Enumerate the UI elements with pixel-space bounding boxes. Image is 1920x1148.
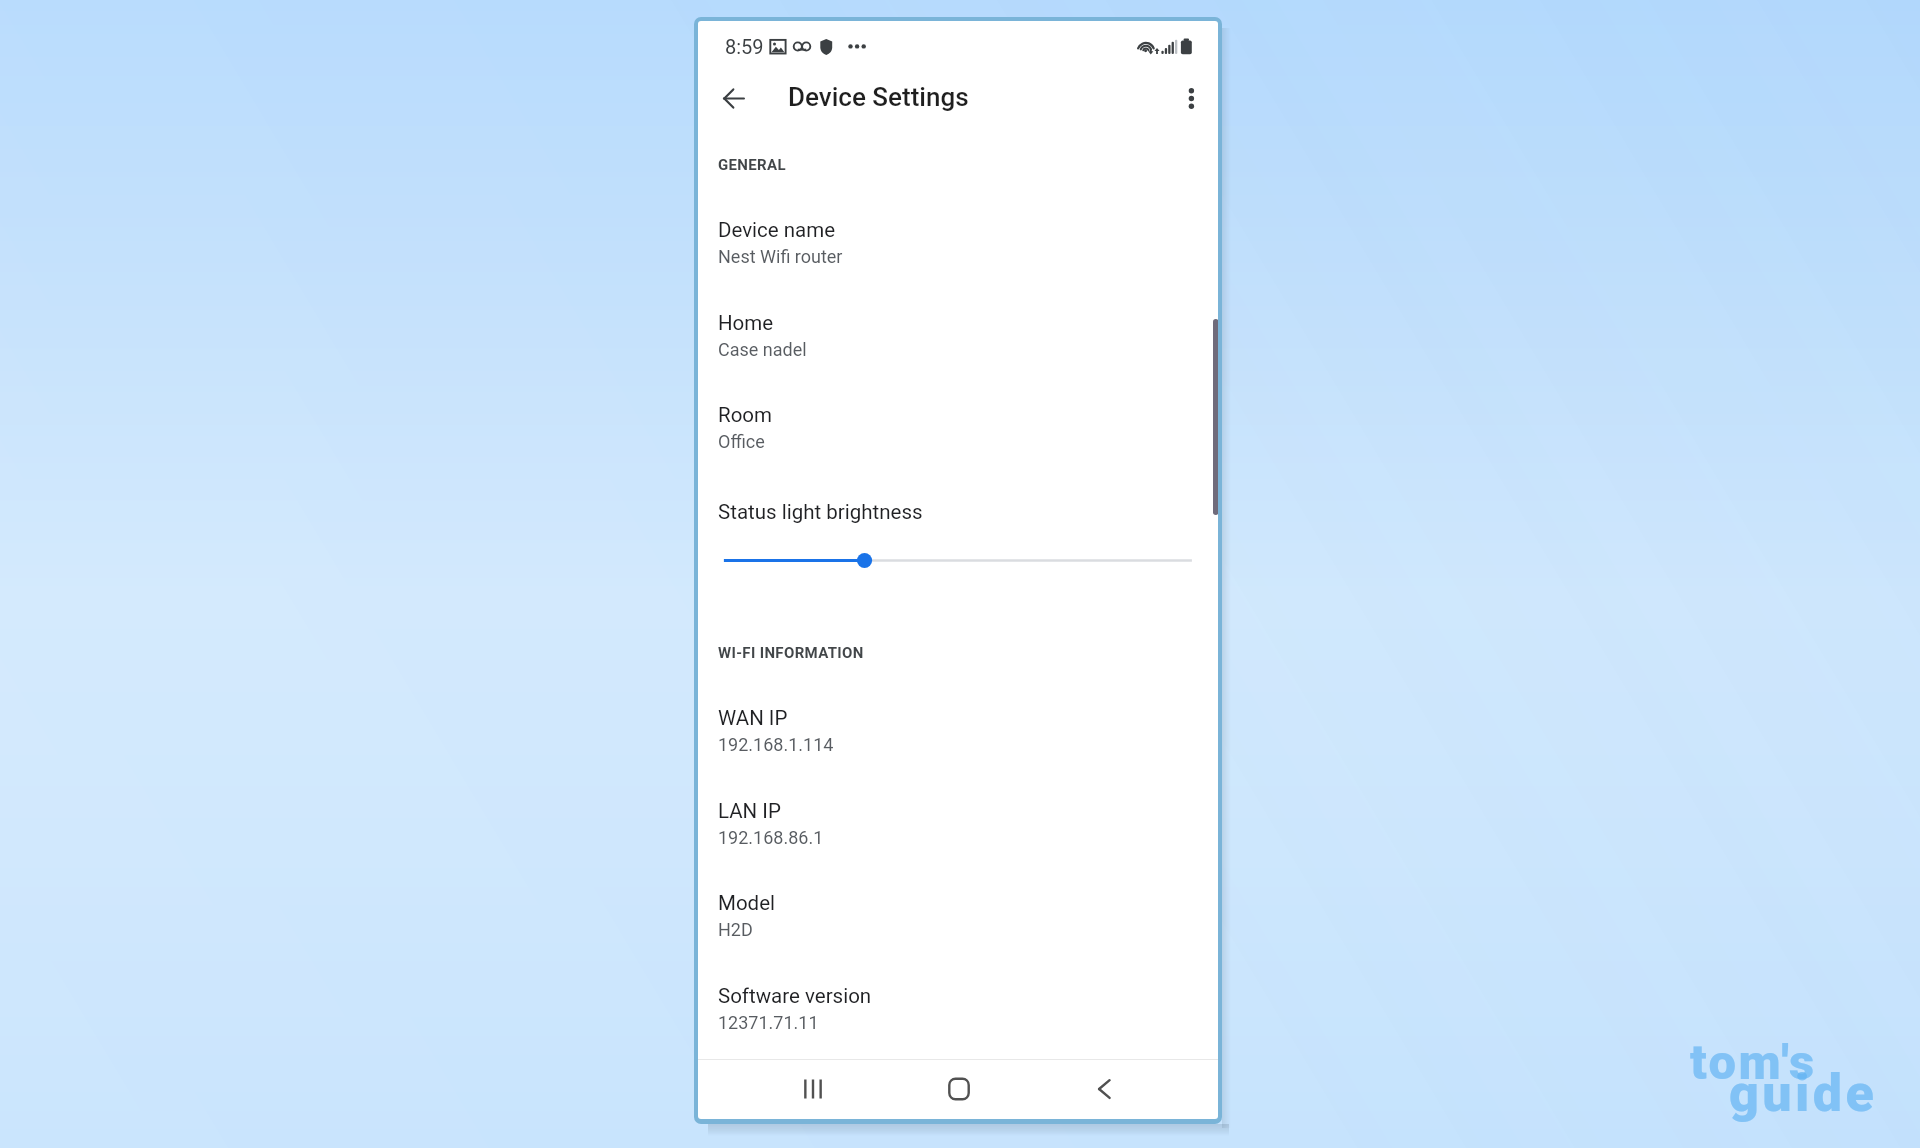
staticText: Nest Wifi router — [718, 246, 843, 267]
staticText: 8:59 — [725, 35, 764, 58]
button[interactable]: Device name — [698, 218, 1218, 274]
staticText: H2D — [718, 919, 753, 940]
button[interactable]: Home — [698, 311, 1218, 367]
button[interactable]: Model — [698, 891, 1218, 947]
staticText: Device name — [718, 218, 836, 242]
button[interactable]: Home — [924, 1059, 994, 1119]
staticText: Office — [718, 431, 765, 452]
button[interactable]: Status light brightness slider — [712, 544, 1204, 578]
button[interactable]: WAN IP — [698, 706, 1218, 762]
staticText: Status light brightness — [718, 500, 923, 524]
staticText: GENERAL — [718, 156, 786, 174]
staticText: Home — [718, 311, 774, 335]
staticText: 192.168.1.114 — [718, 734, 834, 755]
button[interactable]: LAN IP — [698, 799, 1218, 855]
staticText: Device Settings — [788, 82, 969, 112]
staticText: Room — [718, 403, 772, 427]
button[interactable]: Software version — [698, 984, 1218, 1040]
staticText: guide — [1729, 1063, 1878, 1124]
button[interactable]: Back — [1069, 1059, 1139, 1119]
button[interactable]: Back — [709, 74, 758, 123]
staticText: Model — [718, 891, 776, 915]
staticText: Case nadel — [718, 339, 807, 360]
staticText: LAN IP — [718, 799, 781, 823]
button[interactable]: More options — [1166, 74, 1215, 123]
staticText: tom's — [1690, 1034, 1817, 1091]
staticText: 192.168.86.1 — [718, 827, 824, 848]
button[interactable]: Status light brightness — [698, 500, 1218, 528]
staticText: WI-FI INFORMATION — [718, 644, 864, 662]
button[interactable]: Room — [698, 403, 1218, 459]
staticText: WAN IP — [718, 706, 788, 730]
button[interactable]: Recent apps — [778, 1059, 848, 1119]
staticText: 12371.71.11 — [718, 1012, 819, 1033]
staticText: Software version — [718, 984, 872, 1008]
